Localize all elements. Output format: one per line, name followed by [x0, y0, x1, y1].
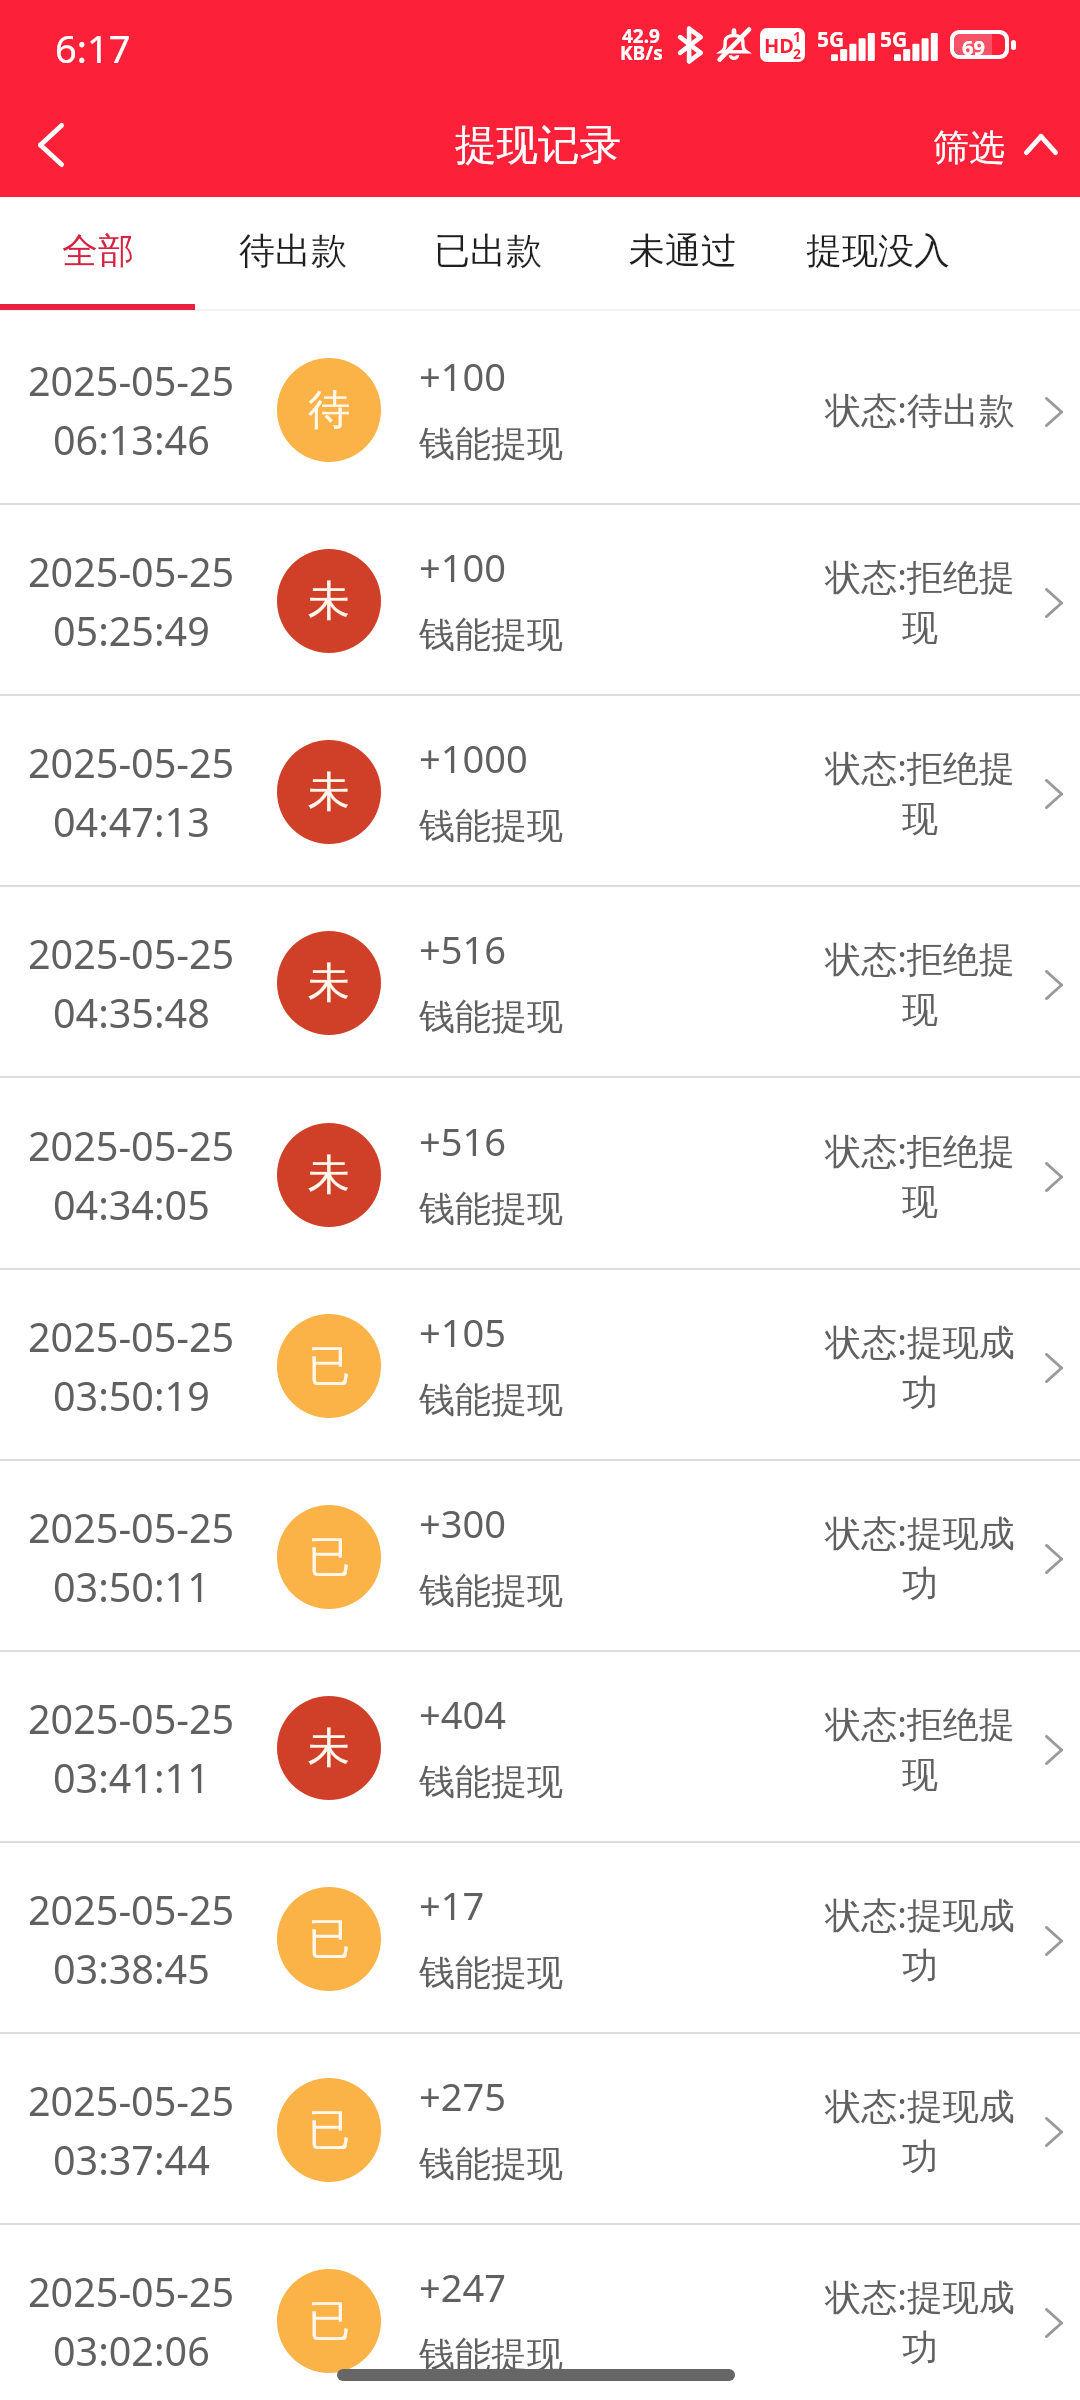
staticText: KB/s [620, 40, 663, 66]
staticText: +100 [419, 350, 506, 402]
button[interactable]: 2025-05-25 [0, 887, 1080, 1076]
staticText: 钱能提现 [419, 803, 563, 848]
staticText: 筛选 [933, 125, 1005, 170]
staticText: +300 [419, 1497, 506, 1549]
staticText: 03:37:44 [53, 2133, 210, 2187]
staticText: 2 [793, 44, 802, 62]
staticText: 状态:提现成功 [822, 2081, 1018, 2179]
staticText: 状态:拒绝提现 [822, 1126, 1018, 1224]
staticText: 待 [308, 384, 350, 437]
staticText: 未 [308, 575, 350, 628]
staticText: +247 [419, 2261, 506, 2313]
staticText: 钱能提现 [419, 994, 563, 1039]
staticText: 状态:拒绝提现 [822, 934, 1018, 1032]
button[interactable]: 2025-05-25 [0, 1270, 1080, 1459]
button[interactable]: 2025-05-25 [0, 2225, 1080, 2400]
button[interactable]: 2025-05-25 [0, 1461, 1080, 1650]
staticText: +516 [419, 1115, 506, 1167]
button[interactable]: 2025-05-25 [0, 1079, 1080, 1268]
button[interactable]: 2025-05-25 [0, 505, 1080, 694]
staticText: 状态:拒绝提现 [822, 552, 1018, 650]
staticText: 提现记录 [455, 119, 621, 171]
staticText: 状态:提现成功 [822, 1508, 1018, 1606]
button[interactable]: 2025-05-25 [0, 1652, 1080, 1841]
staticText: +100 [419, 541, 506, 593]
staticText: 2025-05-25 [28, 2265, 235, 2319]
staticText: 2025-05-25 [28, 545, 235, 599]
staticText: +275 [419, 2070, 506, 2122]
staticText: 04:35:48 [53, 986, 210, 1040]
staticText: 未 [308, 1149, 350, 1202]
staticText: 03:50:11 [53, 1560, 210, 1614]
staticText: 03:38:45 [53, 1942, 210, 1996]
staticText: 钱能提现 [419, 1568, 563, 1613]
staticText: 06:13:46 [53, 413, 210, 467]
button[interactable]: 已出款 [390, 197, 585, 311]
staticText: +17 [419, 1879, 485, 1931]
button[interactable]: 待出款 [195, 197, 390, 311]
staticText: 已 [308, 1340, 350, 1393]
button[interactable]: 筛选 [933, 97, 1080, 197]
staticText: 04:34:05 [53, 1178, 210, 1232]
staticText: 03:50:19 [53, 1369, 210, 1423]
button[interactable]: 2025-05-25 [0, 2034, 1080, 2223]
staticText: 钱能提现 [419, 421, 563, 466]
staticText: 03:41:11 [53, 1751, 210, 1805]
button[interactable]: 未通过 [585, 197, 780, 311]
staticText: 2025-05-25 [28, 1119, 235, 1173]
button[interactable]: Back [6, 95, 96, 195]
staticText: 全部 [62, 228, 134, 273]
staticText: 已 [308, 1531, 350, 1584]
staticText: 未 [308, 957, 350, 1010]
staticText: 未 [308, 766, 350, 819]
staticText: 已 [308, 2104, 350, 2157]
staticText: 2025-05-25 [28, 1501, 235, 1555]
staticText: +516 [419, 923, 506, 975]
staticText: +105 [419, 1306, 506, 1358]
staticText: 钱能提现 [419, 2141, 563, 2186]
staticText: 钱能提现 [419, 1759, 563, 1804]
staticText: 状态:提现成功 [822, 1317, 1018, 1415]
staticText: 03:02:06 [53, 2324, 210, 2378]
staticText: 钱能提现 [419, 1377, 563, 1422]
staticText: 钱能提现 [419, 1950, 563, 1995]
button[interactable]: 全部 [0, 197, 195, 311]
staticText: 5G [817, 25, 845, 54]
staticText: 状态:提现成功 [822, 1890, 1018, 1988]
staticText: 已 [308, 2295, 350, 2348]
staticText: 2025-05-25 [28, 2074, 235, 2128]
staticText: 未 [308, 1722, 350, 1775]
staticText: 待出款 [239, 228, 347, 273]
staticText: 状态:拒绝提现 [822, 1699, 1018, 1797]
staticText: 状态:拒绝提现 [822, 743, 1018, 841]
staticText: 5G [880, 25, 908, 54]
staticText: 2025-05-25 [28, 1883, 235, 1937]
staticText: +1000 [419, 732, 528, 784]
staticText: 2025-05-25 [28, 736, 235, 790]
staticText: 钱能提现 [419, 612, 563, 657]
staticText: 钱能提现 [419, 1186, 563, 1231]
staticText: 42.9 [622, 23, 660, 49]
staticText: 状态:待出款 [825, 385, 1015, 434]
button[interactable]: 提现没入 [780, 197, 975, 311]
staticText: 钱能提现 [419, 2332, 563, 2377]
staticText: 2025-05-25 [28, 1310, 235, 1364]
staticText: 05:25:49 [53, 604, 210, 658]
staticText: 69 [962, 34, 985, 55]
button[interactable]: 2025-05-25 [0, 1843, 1080, 2032]
staticText: 状态:提现成功 [822, 2272, 1018, 2370]
staticText: +404 [419, 1688, 506, 1740]
staticText: HD [764, 32, 794, 59]
staticText: 提现没入 [806, 228, 950, 273]
staticText: 04:47:13 [53, 795, 210, 849]
staticText: 未通过 [629, 228, 737, 273]
staticText: 已出款 [434, 228, 542, 273]
staticText: 2025-05-25 [28, 354, 235, 408]
button[interactable]: 2025-05-25 [0, 314, 1080, 503]
staticText: 2025-05-25 [28, 927, 235, 981]
staticText: 6:17 [55, 22, 131, 74]
button[interactable]: 2025-05-25 [0, 696, 1080, 885]
staticText: 已 [308, 1913, 350, 1966]
staticText: 2025-05-25 [28, 1692, 235, 1746]
staticText: 1 [793, 28, 802, 46]
